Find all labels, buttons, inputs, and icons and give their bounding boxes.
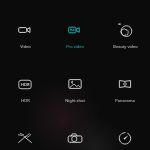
button[interactable]: Video: [0, 2, 50, 56]
button[interactable]: Food: [0, 110, 50, 150]
button[interactable]: HDR: [0, 56, 50, 110]
staticText: Video: [20, 44, 31, 49]
button[interactable]: Panorama: [100, 56, 150, 110]
staticText: Night shot: [65, 98, 85, 103]
staticText: HDR: [21, 82, 30, 87]
button[interactable]: Beauty video: [100, 2, 150, 56]
button[interactable]: Photo: [50, 110, 100, 150]
button[interactable]: Pro video: [50, 2, 100, 56]
staticText: Beauty video: [113, 44, 138, 49]
staticText: Panorama: [115, 98, 135, 103]
staticText: HDR: [21, 98, 30, 103]
button[interactable]: Timer: [100, 110, 150, 150]
button[interactable]: Night shot: [50, 56, 100, 110]
staticText: Pro video: [66, 44, 84, 49]
